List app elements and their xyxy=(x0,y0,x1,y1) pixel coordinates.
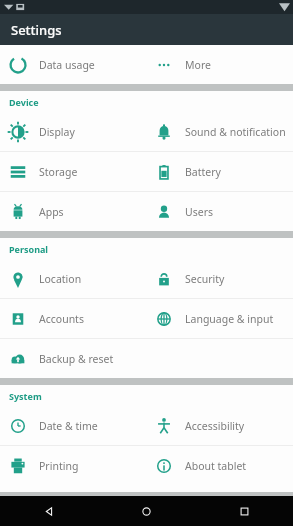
staticText: Apps xyxy=(39,205,64,219)
button[interactable]: Recent apps xyxy=(195,496,293,526)
button[interactable]: Display xyxy=(0,112,146,151)
staticText: Display xyxy=(39,125,75,139)
staticText: Device xyxy=(9,96,39,108)
button[interactable]: Language & input xyxy=(146,299,293,338)
staticText: Settings xyxy=(11,21,62,39)
staticText: Battery xyxy=(185,165,221,179)
staticText: Personal xyxy=(9,243,49,255)
staticText: Sound & notification xyxy=(185,125,286,139)
staticText: Security xyxy=(185,272,225,286)
staticText: More xyxy=(185,58,211,72)
button[interactable]: Location xyxy=(0,259,146,298)
button[interactable]: Sound & notification xyxy=(146,112,293,151)
staticText: Backup & reset xyxy=(39,352,114,366)
button[interactable]: Date & time xyxy=(0,406,146,445)
staticText: Accessibility xyxy=(185,419,245,433)
button[interactable]: Back xyxy=(0,496,97,526)
staticText: Storage xyxy=(39,165,78,179)
staticText: System xyxy=(9,390,42,402)
button[interactable]: About tablet xyxy=(146,446,293,485)
staticText: Date & time xyxy=(39,419,98,433)
button[interactable]: Accessibility xyxy=(146,406,293,445)
button[interactable]: Storage xyxy=(0,152,146,191)
staticText: Printing xyxy=(39,459,79,473)
button[interactable]: Data usage xyxy=(0,45,146,84)
button[interactable]: Battery xyxy=(146,152,293,191)
staticText: Language & input xyxy=(185,312,274,326)
staticText: About tablet xyxy=(185,459,247,473)
staticText: Location xyxy=(39,272,82,286)
staticText: Data usage xyxy=(39,58,95,72)
staticText: Users xyxy=(185,205,213,219)
button[interactable]: Security xyxy=(146,259,293,298)
button[interactable]: Home xyxy=(97,496,195,526)
button[interactable]: Backup & reset xyxy=(0,339,146,378)
staticText: Accounts xyxy=(39,312,84,326)
button[interactable]: Accounts xyxy=(0,299,146,338)
button[interactable]: Users xyxy=(146,192,293,231)
button[interactable]: More xyxy=(146,45,293,84)
button[interactable]: Printing xyxy=(0,446,146,485)
button[interactable]: Apps xyxy=(0,192,146,231)
